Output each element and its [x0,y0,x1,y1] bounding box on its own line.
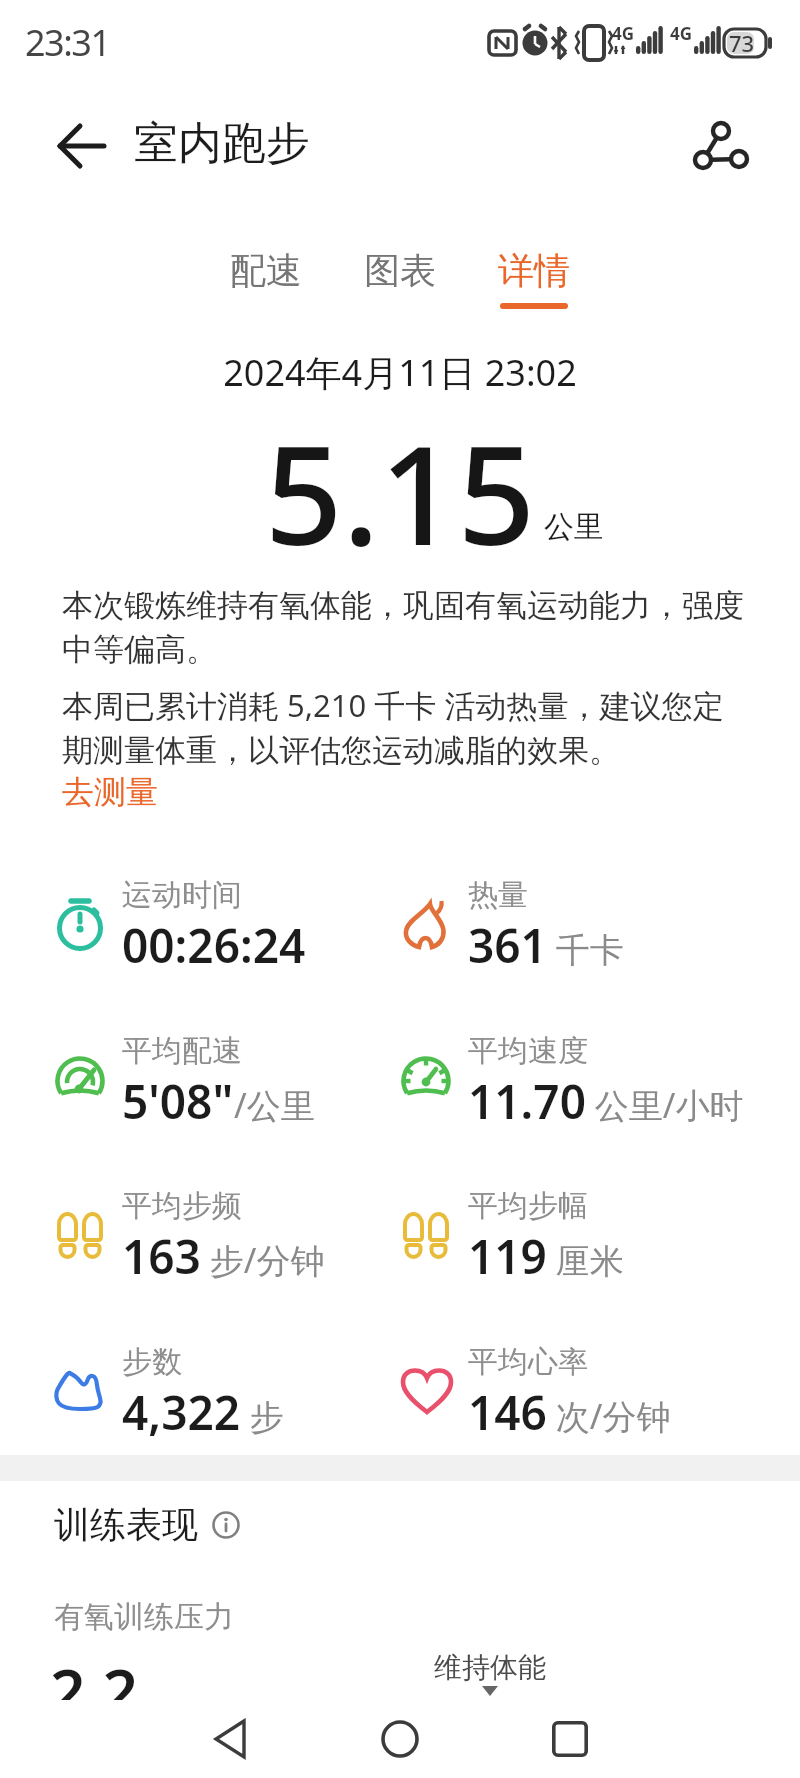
staticText: 5'08" [122,1070,234,1133]
button[interactable]: 配速 [199,244,333,296]
button[interactable]: 热量 [398,876,748,986]
staticText: 73 [729,28,755,58]
staticText: 步/分钟 [201,1237,325,1283]
staticText: 步数 [122,1343,182,1381]
staticText: 平均速度 [468,1032,588,1070]
staticText: 次/分钟 [547,1393,671,1439]
button[interactable]: 图表 [333,244,467,296]
staticText: 热量 [468,876,528,914]
button[interactable]: 平均步频 [52,1187,402,1297]
staticText: 163 [122,1225,201,1288]
button[interactable]: 步数 [52,1343,402,1453]
button[interactable] [360,1700,440,1778]
staticText: 4G [670,22,693,45]
staticText: 公里/小时 [586,1082,744,1128]
button[interactable] [686,116,756,180]
staticText: 本次锻炼维持有氧体能，巩固有氧运动能力，强度中等偏高。 [62,586,752,669]
button[interactable]: 运动时间 [52,876,402,986]
staticText: 步 [241,1393,284,1439]
staticText: 4G [612,22,635,45]
button[interactable]: 平均心率 [398,1343,748,1453]
staticText: 119 [468,1225,547,1288]
staticText: 厘米 [547,1237,624,1283]
staticText: 去测量 [62,772,158,812]
staticText: 公里 [544,508,604,546]
staticText: 5.15 [0,400,800,585]
staticText: 维持体能 [434,1650,546,1685]
staticText: 图表 [364,248,436,293]
staticText: 训练表现 [54,1502,198,1547]
staticText: 2024年4月11日 23:02 [0,348,800,397]
staticText: 146 [468,1381,547,1444]
staticText: 11.70 [468,1070,586,1133]
button[interactable] [190,1700,270,1778]
staticText: /公里 [234,1082,315,1128]
staticText: 平均配速 [122,1032,242,1070]
button[interactable] [530,1700,610,1778]
staticText: 2.2 [50,1648,139,1732]
staticText: 23:31 [25,18,110,67]
staticText: 运动时间 [122,876,242,914]
staticText: 有氧训练压力 [54,1598,234,1636]
staticText: 361 [468,914,547,977]
staticText: 平均步频 [122,1187,242,1225]
staticText: 室内跑步 [134,116,310,171]
staticText: 00:26:24 [122,914,306,977]
staticText: 本周已累计消耗 5,210 千卡 活动热量，建议您定期测量体重，以评估您运动减脂… [62,684,752,770]
button[interactable]: 平均速度 [398,1032,748,1142]
button[interactable]: 详情 [467,244,601,296]
staticText: 千卡 [547,926,624,972]
button[interactable]: 平均步幅 [398,1187,748,1297]
staticText: 详情 [498,248,570,293]
button[interactable]: 去测量 [58,768,162,816]
staticText: 平均步幅 [468,1187,588,1225]
staticText: 4,322 [122,1381,241,1444]
button[interactable]: 平均配速 [52,1032,402,1142]
button[interactable] [52,116,118,176]
staticText: 平均心率 [468,1343,588,1381]
staticText: 配速 [230,248,302,293]
